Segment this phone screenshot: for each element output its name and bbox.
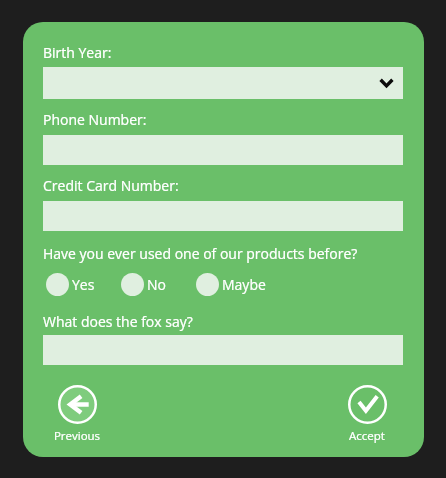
staticText: Credit Card Number: [43, 176, 179, 195]
button[interactable]: Yes [46, 273, 95, 296]
staticText: Maybe [222, 275, 266, 294]
button[interactable]: Accept [327, 385, 407, 443]
staticText: Have you ever used one of our products b… [43, 244, 358, 263]
staticText: Birth Year: [43, 43, 112, 62]
staticText: What does the fox say? [43, 312, 193, 331]
button[interactable]: No [121, 273, 166, 296]
staticText: Accept [327, 428, 407, 444]
button[interactable]: Birth Year dropdown [43, 67, 403, 99]
staticText: No [147, 275, 166, 294]
button[interactable]: Maybe [196, 273, 266, 296]
staticText: Phone Number: [43, 110, 147, 129]
staticText: Yes [72, 275, 95, 294]
staticText: Previous [37, 428, 117, 444]
button[interactable]: Previous [37, 385, 117, 443]
